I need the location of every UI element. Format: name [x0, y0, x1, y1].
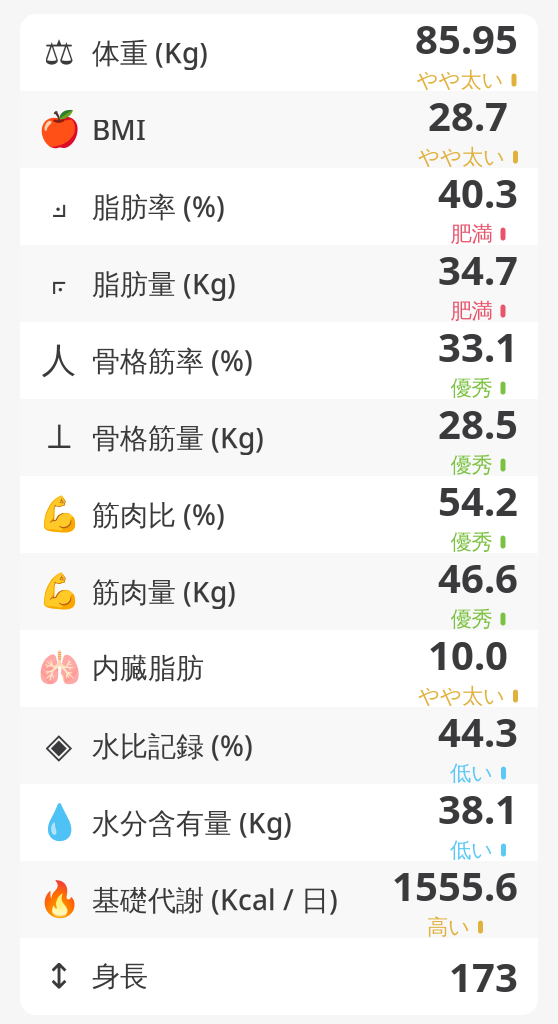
staticText: 水分含有量 (Kg) [92, 804, 292, 841]
staticText: 骨格筋量 (Kg) [92, 419, 264, 456]
staticText: 44.3 [438, 705, 518, 758]
button[interactable]: ⟂ [20, 399, 538, 476]
staticText: やや太い [416, 67, 503, 93]
staticText: 優秀 [450, 452, 492, 478]
button[interactable]: ⚖ [20, 14, 538, 91]
staticText: 34.7 [438, 243, 518, 296]
staticText: 低い [450, 837, 493, 863]
staticText: 10.0 [428, 628, 508, 681]
staticText: 骨格筋率 (%) [92, 342, 253, 379]
button[interactable]: ◈ [20, 707, 538, 784]
button[interactable]: 🫁 [20, 630, 538, 707]
staticText: 脂肪量 (Kg) [92, 265, 236, 302]
staticText: 85.95 [415, 12, 518, 65]
button[interactable]: 🍎 [20, 91, 538, 168]
staticText: 38.1 [438, 782, 518, 835]
staticText: 優秀 [450, 529, 492, 555]
staticText: やや太い [418, 683, 505, 709]
staticText: 内臓脂肪 [92, 651, 204, 686]
staticText: 筋肉比 (%) [92, 496, 225, 533]
button[interactable]: ↕ [20, 938, 538, 1015]
staticText: 46.6 [438, 551, 518, 604]
staticText: 🫁 [37, 649, 80, 688]
staticText: 筋肉量 (Kg) [92, 573, 236, 610]
staticText: 173 [449, 950, 518, 1003]
staticText: 肥満 [450, 221, 492, 247]
staticText: 基礎代謝 (Kcal / 日) [92, 881, 338, 918]
staticText: 🔥 [37, 880, 80, 919]
staticText: 体重 (Kg) [92, 34, 208, 71]
staticText: 54.2 [438, 474, 518, 527]
staticText: 💧 [37, 803, 80, 842]
staticText: ↕ [44, 957, 73, 996]
button[interactable]: ⟓ [20, 168, 538, 245]
staticText: 28.7 [428, 89, 508, 142]
staticText: ⟔ [51, 267, 67, 300]
staticText: 1555.6 [392, 859, 518, 912]
staticText: やや太い [418, 144, 505, 170]
staticText: 🍎 [37, 110, 80, 149]
staticText: 40.3 [438, 166, 518, 219]
staticText: 優秀 [450, 606, 492, 632]
button[interactable]: 💪 [20, 476, 538, 553]
staticText: ⚖ [43, 33, 74, 72]
staticText: 💪 [37, 495, 80, 534]
staticText: ⼈ [41, 339, 76, 382]
button[interactable]: 🔥 [20, 861, 538, 938]
staticText: 高い [427, 914, 470, 940]
staticText: ⟓ [51, 190, 67, 223]
staticText: 低い [450, 760, 493, 786]
button[interactable]: 💧 [20, 784, 538, 861]
staticText: 肥満 [450, 298, 492, 324]
staticText: 💪 [37, 572, 80, 611]
button[interactable]: ⼈ [20, 322, 538, 399]
button[interactable]: 💪 [20, 553, 538, 630]
staticText: ⟂ [47, 421, 70, 454]
staticText: 水比記録 (%) [92, 727, 253, 764]
staticText: 脂肪率 (%) [92, 188, 225, 225]
staticText: 28.5 [438, 397, 518, 450]
staticText: 優秀 [450, 375, 492, 401]
button[interactable]: ⟔ [20, 245, 538, 322]
staticText: BMI [92, 111, 146, 148]
staticText: ◈ [45, 726, 72, 765]
staticText: 33.1 [438, 320, 518, 373]
staticText: 身長 [92, 959, 148, 994]
